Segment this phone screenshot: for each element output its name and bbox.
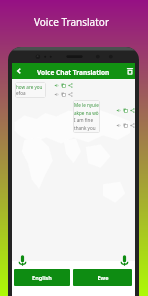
button[interactable]: how are you <box>15 82 46 98</box>
button[interactable]: Back <box>13 65 25 77</box>
button[interactable]: Record English <box>17 255 28 266</box>
staticText: Voice Translator <box>34 15 110 29</box>
button[interactable]: Share <box>130 108 135 113</box>
button[interactable]: Speak <box>54 83 59 88</box>
button[interactable]: Copy <box>123 108 128 113</box>
staticText: Voice Chat Translation <box>37 68 110 77</box>
button[interactable]: Share <box>68 92 73 97</box>
button[interactable]: Speak <box>116 108 121 113</box>
staticText: Me le nyuie akpe na wò <box>74 102 99 116</box>
staticText: I am fine thank you <box>74 117 96 131</box>
button[interactable]: Record Ewe <box>119 255 130 266</box>
staticText: Ewe <box>97 274 109 281</box>
staticText: how are you <box>16 84 43 90</box>
button[interactable]: Copy <box>61 83 66 88</box>
button[interactable]: Ewe <box>73 269 132 286</box>
staticText: English <box>32 274 52 281</box>
button[interactable]: Share <box>130 123 135 128</box>
button[interactable]: Share <box>68 83 73 88</box>
button[interactable]: Copy <box>123 123 128 128</box>
staticText: efoa <box>16 90 26 96</box>
button[interactable]: Copy <box>61 92 66 97</box>
button[interactable]: English <box>14 269 70 286</box>
button[interactable]: Speak <box>116 123 121 128</box>
button[interactable]: Speak <box>54 92 59 97</box>
button[interactable]: Me le nyuie akpe na wò <box>73 100 100 133</box>
button[interactable]: Delete conversation <box>125 66 135 76</box>
